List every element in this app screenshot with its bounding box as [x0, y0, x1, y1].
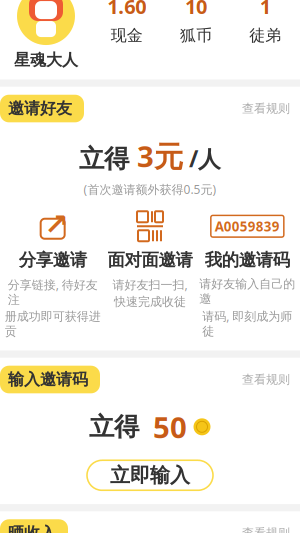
- staticText: /人: [183, 143, 221, 173]
- staticText: 请好友输入自己的邀: [199, 276, 295, 306]
- staticText: 立得: [89, 411, 147, 442]
- staticText: 分享邀请: [19, 249, 87, 270]
- button[interactable]: 面对面邀请: [101, 211, 199, 309]
- staticText: 查看规则: [242, 372, 290, 387]
- staticText: 立即输入: [110, 463, 190, 488]
- staticText: ↗: [44, 208, 69, 241]
- button[interactable]: ↗: [4, 211, 101, 339]
- staticText: 立得: [79, 143, 137, 174]
- staticText: 面对面邀请: [107, 249, 192, 270]
- staticText: 晒收入: [8, 523, 56, 533]
- staticText: 现金: [111, 26, 143, 45]
- staticText: 输入邀请码: [8, 370, 88, 389]
- staticText: 狐币: [180, 26, 212, 45]
- staticText: 查看规则: [242, 526, 290, 533]
- staticText: 快速完成收徒: [114, 294, 186, 309]
- staticText: 请码, 即刻成为师徒: [202, 308, 292, 339]
- staticText: A0059839: [215, 217, 280, 235]
- staticText: (首次邀请额外获得0.5元): [83, 181, 216, 197]
- staticText: 1: [260, 0, 271, 20]
- button[interactable]: A0059839: [199, 211, 296, 339]
- staticText: 分享链接, 待好友注: [8, 276, 98, 307]
- staticText: 查看规则: [242, 101, 290, 116]
- staticText: 10: [185, 0, 207, 20]
- staticText: 邀请好友: [8, 99, 72, 118]
- staticText: 星魂大人: [14, 50, 78, 70]
- button[interactable]: 查看规则: [242, 522, 300, 533]
- staticText: 我的邀请码: [205, 249, 290, 270]
- button[interactable]: 查看规则: [242, 97, 300, 120]
- staticText: 徒弟: [249, 26, 281, 45]
- button[interactable]: 立即输入: [87, 460, 213, 490]
- staticText: 1.60: [107, 0, 146, 20]
- staticText: 50: [153, 407, 187, 446]
- staticText: 请好友扫一扫,: [112, 276, 187, 292]
- button[interactable]: 查看规则: [242, 368, 300, 391]
- staticText: 册成功即可获得进贡: [5, 309, 101, 339]
- staticText: 3元: [137, 136, 183, 175]
